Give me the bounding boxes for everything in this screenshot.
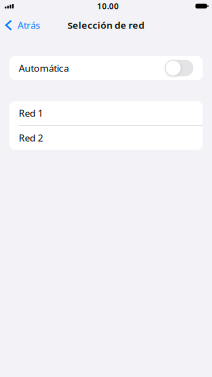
- staticText: Red 2: [19, 131, 43, 144]
- button[interactable]: Red 1: [9, 101, 203, 125]
- staticText: Selección de red: [67, 19, 144, 32]
- button[interactable]: Red 2: [9, 126, 203, 150]
- staticText: Red 1: [19, 107, 43, 120]
- staticText: Automática: [19, 62, 69, 75]
- button[interactable]: Atrás: [0, 17, 40, 34]
- staticText: 10.00: [97, 1, 119, 12]
- staticText: Atrás: [17, 19, 40, 32]
- button[interactable]: Automática: [9, 56, 203, 80]
